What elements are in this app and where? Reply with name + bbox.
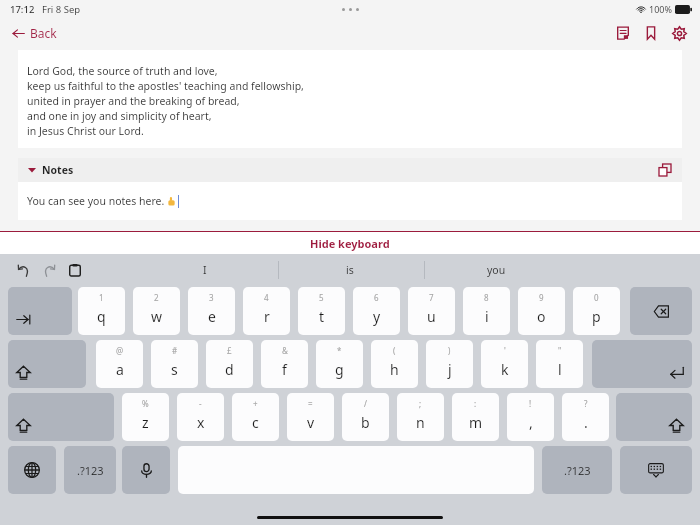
staticText: * xyxy=(337,345,342,356)
button[interactable]: 4 xyxy=(243,287,290,335)
staticText: " xyxy=(558,345,562,356)
button[interactable]: - xyxy=(177,393,224,441)
staticText: Hide keyboard xyxy=(310,236,390,251)
staticText: p xyxy=(592,307,601,326)
button[interactable]: # xyxy=(151,340,198,388)
button[interactable]: ! xyxy=(507,393,554,441)
staticText: d xyxy=(225,360,234,379)
staticText: - xyxy=(199,398,202,409)
staticText: a xyxy=(116,360,124,379)
button[interactable]: ; xyxy=(397,393,444,441)
button[interactable]: globe xyxy=(8,446,56,494)
staticText: j xyxy=(448,360,452,379)
button[interactable]: / xyxy=(342,393,389,441)
button[interactable]: Duplicate xyxy=(654,159,676,181)
button[interactable]: = xyxy=(287,393,334,441)
button[interactable]: Undo xyxy=(12,259,34,281)
button[interactable]: 6 xyxy=(353,287,400,335)
staticText: e xyxy=(208,307,216,326)
staticText: / xyxy=(364,398,367,409)
staticText: Back xyxy=(30,25,57,41)
button[interactable]: you xyxy=(466,254,526,285)
button[interactable]: @ xyxy=(96,340,143,388)
staticText: .?123 xyxy=(564,463,591,478)
button[interactable]: Redo xyxy=(38,259,60,281)
button[interactable]: ) xyxy=(426,340,473,388)
staticText: : xyxy=(474,398,477,409)
button[interactable]: is xyxy=(320,254,380,285)
button[interactable]: shift xyxy=(8,393,114,441)
staticText: Fri 8 Sep xyxy=(42,3,81,16)
staticText: ' xyxy=(504,345,506,356)
button[interactable]: Hide keyboard xyxy=(0,232,700,254)
button[interactable]: tab xyxy=(8,287,72,335)
staticText: 7 xyxy=(429,292,434,303)
button[interactable]: 0 xyxy=(573,287,620,335)
button[interactable]: 5 xyxy=(298,287,345,335)
button[interactable]: " xyxy=(536,340,583,388)
staticText: k xyxy=(501,360,509,379)
staticText: i xyxy=(485,307,489,326)
button[interactable]: Notes xyxy=(610,20,636,46)
button[interactable]: Bookmark xyxy=(638,20,664,46)
staticText: 3 xyxy=(209,292,214,303)
button[interactable]: enter xyxy=(592,340,692,388)
button[interactable]: £ xyxy=(206,340,253,388)
staticText: q xyxy=(97,307,106,326)
staticText: m xyxy=(469,413,483,432)
button[interactable]: & xyxy=(261,340,308,388)
button[interactable]: shift xyxy=(8,340,86,388)
button[interactable]: Lord God, the source of truth and love, xyxy=(18,50,682,148)
staticText: 9 xyxy=(539,292,544,303)
staticText: h xyxy=(390,360,399,379)
button[interactable]: .?123 xyxy=(64,446,116,494)
staticText: You can see you notes here. xyxy=(27,194,167,208)
button[interactable]: ? xyxy=(562,393,609,441)
staticText: 8 xyxy=(484,292,489,303)
button[interactable]: Notes xyxy=(18,158,682,182)
button[interactable]: ( xyxy=(371,340,418,388)
staticText: g xyxy=(335,360,344,379)
button[interactable]: 7 xyxy=(408,287,455,335)
staticText: n xyxy=(416,413,425,432)
staticText: b xyxy=(361,413,370,432)
staticText: v xyxy=(307,413,315,432)
staticText: is xyxy=(346,263,354,277)
staticText: united in prayer and the breaking of bre… xyxy=(27,94,240,108)
button[interactable]: kbdown xyxy=(620,446,692,494)
button[interactable]: ' xyxy=(481,340,528,388)
button[interactable]: + xyxy=(232,393,279,441)
staticText: + xyxy=(253,398,258,409)
button[interactable]: You can see you notes here. xyxy=(18,182,682,220)
button[interactable]: 1 xyxy=(78,287,125,335)
staticText: y xyxy=(373,307,381,326)
staticText: 4 xyxy=(264,292,269,303)
staticText: 1 xyxy=(99,292,104,303)
staticText: f xyxy=(282,360,287,379)
button[interactable]: Back xyxy=(8,22,61,44)
button[interactable]: Clipboard xyxy=(64,259,86,281)
button[interactable]: mic xyxy=(122,446,170,494)
button[interactable]: Settings xyxy=(666,20,692,46)
button[interactable]: .?123 xyxy=(542,446,612,494)
button[interactable]: 2 xyxy=(133,287,180,335)
button[interactable]: 8 xyxy=(463,287,510,335)
button[interactable]: * xyxy=(316,340,363,388)
button[interactable]: 9 xyxy=(518,287,565,335)
staticText: s xyxy=(171,360,178,379)
button[interactable]: 3 xyxy=(188,287,235,335)
button[interactable]: I xyxy=(175,254,235,285)
button[interactable]: backspace xyxy=(630,287,692,335)
staticText: Notes xyxy=(42,163,74,177)
staticText: 0 xyxy=(594,292,599,303)
staticText: 17:12 xyxy=(10,3,35,16)
staticText: & xyxy=(282,345,288,356)
button[interactable]: shift xyxy=(616,393,692,441)
button[interactable]: % xyxy=(122,393,169,441)
staticText: I xyxy=(203,263,207,277)
staticText: , xyxy=(529,413,533,432)
staticText: ) xyxy=(448,345,451,356)
button[interactable]: : xyxy=(452,393,499,441)
staticText: you xyxy=(487,263,506,277)
